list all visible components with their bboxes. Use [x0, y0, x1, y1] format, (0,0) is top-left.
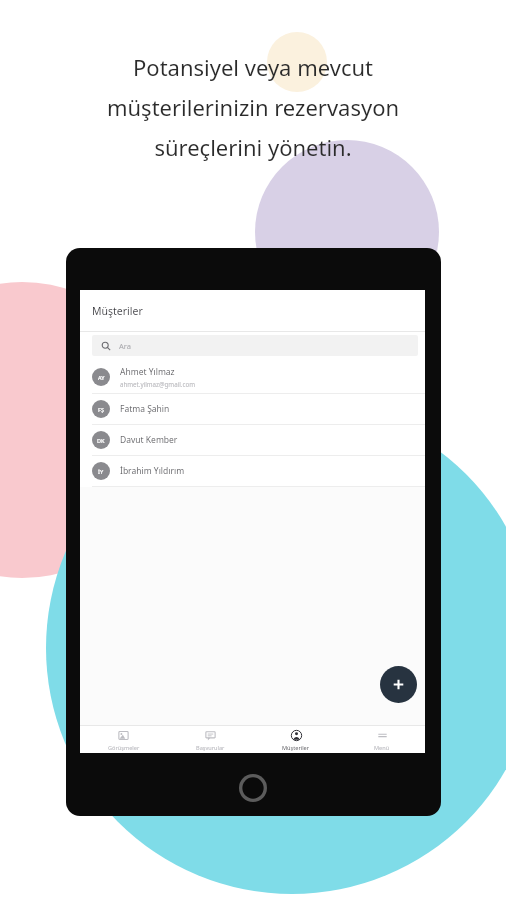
- staticText: Fatma Şahin: [120, 403, 170, 415]
- staticText: Davut Kember: [120, 434, 178, 446]
- staticText: AY: [98, 374, 105, 381]
- button[interactable]: Başvurular: [167, 726, 253, 753]
- staticText: Ahmet Yılmaz: [120, 366, 175, 378]
- staticText: FŞ: [98, 406, 104, 413]
- button[interactable]: Yeni müşteri ekle: [380, 666, 417, 703]
- staticText: ahmet.yilmaz@gmail.com: [120, 380, 195, 388]
- button[interactable]: Görüşmeler: [80, 726, 167, 753]
- staticText: Başvurular: [196, 744, 225, 752]
- button[interactable]: İY: [80, 456, 425, 486]
- staticText: Ara: [119, 341, 131, 351]
- staticText: Potansiyel veya mevcut müşterilerinizin …: [30, 52, 476, 162]
- staticText: DK: [97, 437, 105, 444]
- staticText: Görüşmeler: [108, 744, 140, 752]
- staticText: Müşteriler: [92, 304, 143, 318]
- staticText: Müşteriler: [282, 744, 310, 752]
- staticText: İY: [98, 468, 104, 475]
- staticText: Menü: [374, 744, 390, 752]
- button[interactable]: DK: [80, 425, 425, 455]
- button[interactable]: Menü: [339, 726, 425, 753]
- button[interactable]: Müşteriler: [253, 726, 339, 753]
- button[interactable]: AY: [80, 360, 425, 393]
- button[interactable]: Ara: [92, 335, 418, 356]
- staticText: İbrahim Yıldırım: [120, 465, 185, 477]
- button[interactable]: FŞ: [80, 394, 425, 424]
